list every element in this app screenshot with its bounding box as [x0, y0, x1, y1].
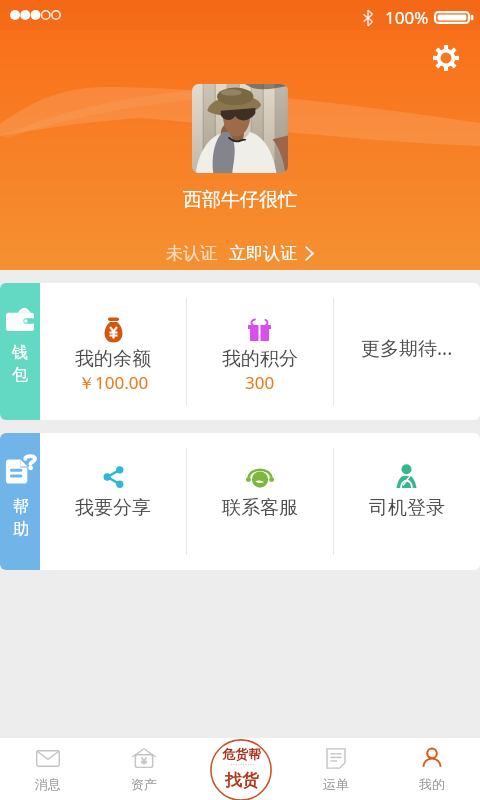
button[interactable]: 我的	[384, 738, 480, 800]
staticText: 找货	[225, 770, 259, 791]
button[interactable]: 消息	[0, 738, 96, 800]
staticText: 运单	[323, 776, 349, 792]
staticText: 帮 助	[13, 497, 29, 538]
staticText: 资产	[131, 776, 157, 792]
staticText: 我的余额	[75, 347, 151, 371]
button[interactable]: 我的积分	[186, 283, 333, 420]
button[interactable]: 帮 助	[0, 433, 40, 570]
staticText: 西部牛仔很忙	[183, 188, 297, 212]
button[interactable]: Settings	[426, 38, 466, 78]
staticText: 立即认证	[229, 243, 297, 264]
button[interactable]: 资产	[96, 738, 192, 800]
button[interactable]: 钱 包	[0, 283, 40, 420]
staticText: 消息	[35, 776, 61, 792]
staticText: 更多期待...	[361, 335, 453, 361]
staticText: 我要分享	[75, 496, 151, 520]
staticText: 我的积分	[222, 347, 298, 371]
button[interactable]: Profile photo	[192, 84, 288, 173]
button[interactable]: 运单	[288, 738, 384, 800]
button[interactable]: 我的余额	[40, 283, 186, 420]
staticText: 100%	[385, 6, 429, 29]
button[interactable]: 危货帮	[209, 739, 273, 800]
staticText: 300	[245, 371, 275, 394]
button[interactable]: 未认证	[166, 243, 314, 264]
button[interactable]: 司机登录	[333, 433, 480, 570]
staticText: 司机登录	[369, 496, 445, 520]
staticText: 我的	[419, 776, 445, 792]
staticText: 钱 包	[12, 343, 28, 384]
staticText: ￥100.00	[78, 371, 149, 394]
button[interactable]: 更多期待...	[333, 283, 480, 420]
button[interactable]: 我要分享	[40, 433, 186, 570]
staticText: 危货帮	[222, 746, 261, 762]
staticText: 未认证	[166, 243, 217, 264]
staticText: 联系客服	[222, 496, 298, 520]
button[interactable]: 联系客服	[186, 433, 333, 570]
